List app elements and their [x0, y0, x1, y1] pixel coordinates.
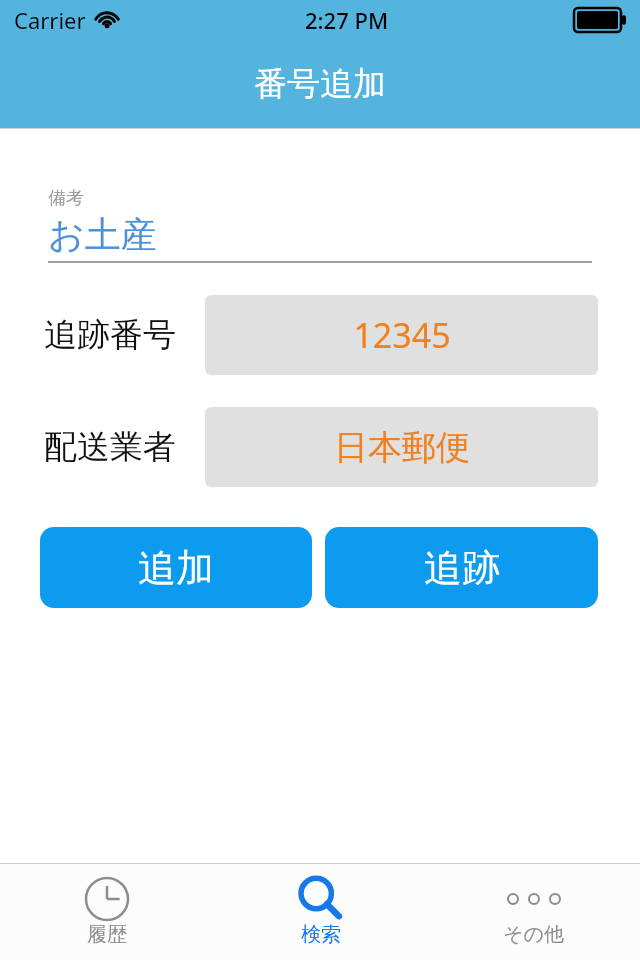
button[interactable]: Search [214, 864, 427, 960]
staticText: お土産 [48, 212, 157, 257]
staticText: 履歴 [87, 922, 127, 947]
staticText: 日本郵便 [334, 426, 470, 469]
button[interactable]: More [427, 864, 640, 960]
staticText: Carrier [14, 5, 86, 35]
staticText: 追跡 [424, 544, 500, 592]
staticText: 追加 [138, 544, 214, 592]
staticText: 12345 [353, 312, 451, 358]
staticText: 番号追加 [254, 63, 386, 105]
staticText: その他 [503, 922, 564, 947]
button[interactable]: 日本郵便 [205, 407, 598, 487]
button[interactable]: 追加 [40, 527, 312, 608]
button[interactable]: History [0, 864, 214, 960]
staticText: 配送業者 [44, 426, 176, 468]
button[interactable]: 追跡 [325, 527, 598, 608]
staticText: 備考 [48, 187, 84, 210]
staticText: 検索 [301, 922, 341, 947]
staticText: 追跡番号 [44, 314, 176, 356]
button[interactable]: 12345 [205, 295, 598, 375]
staticText: 2:27 PM [305, 5, 389, 35]
